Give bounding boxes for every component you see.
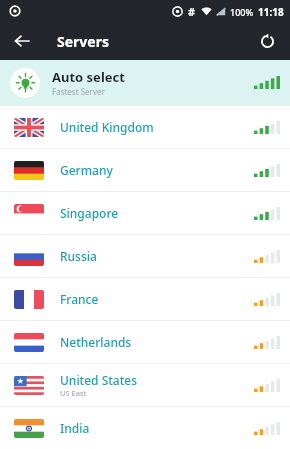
- button[interactable]: France: [0, 278, 290, 320]
- staticText: Netherlands: [60, 334, 132, 350]
- staticText: Singapore: [60, 205, 119, 221]
- staticText: Russia: [60, 248, 97, 264]
- staticText: United Kingdom: [60, 119, 154, 135]
- staticText: Auto select: [52, 68, 125, 86]
- staticText: Fastest Server: [52, 86, 105, 97]
- button[interactable]: Refresh: [252, 26, 282, 56]
- button[interactable]: Singapore: [0, 192, 290, 234]
- staticText: United States: [60, 372, 138, 388]
- staticText: Servers: [57, 32, 109, 51]
- staticText: US East: [60, 388, 87, 398]
- staticText: Germany: [60, 162, 113, 178]
- button[interactable]: Netherlands: [0, 321, 290, 363]
- button[interactable]: Back: [7, 26, 37, 56]
- button[interactable]: United Kingdom: [0, 106, 290, 148]
- button[interactable]: Russia: [0, 235, 290, 277]
- staticText: 11:18: [258, 5, 284, 19]
- button[interactable]: Germany: [0, 149, 290, 191]
- button[interactable]: India: [0, 407, 290, 449]
- button[interactable]: United States: [0, 364, 290, 406]
- button[interactable]: Auto select: [0, 60, 290, 105]
- staticText: France: [60, 291, 99, 307]
- staticText: #: [188, 4, 196, 19]
- staticText: India: [60, 420, 90, 436]
- staticText: 100%: [230, 6, 254, 18]
